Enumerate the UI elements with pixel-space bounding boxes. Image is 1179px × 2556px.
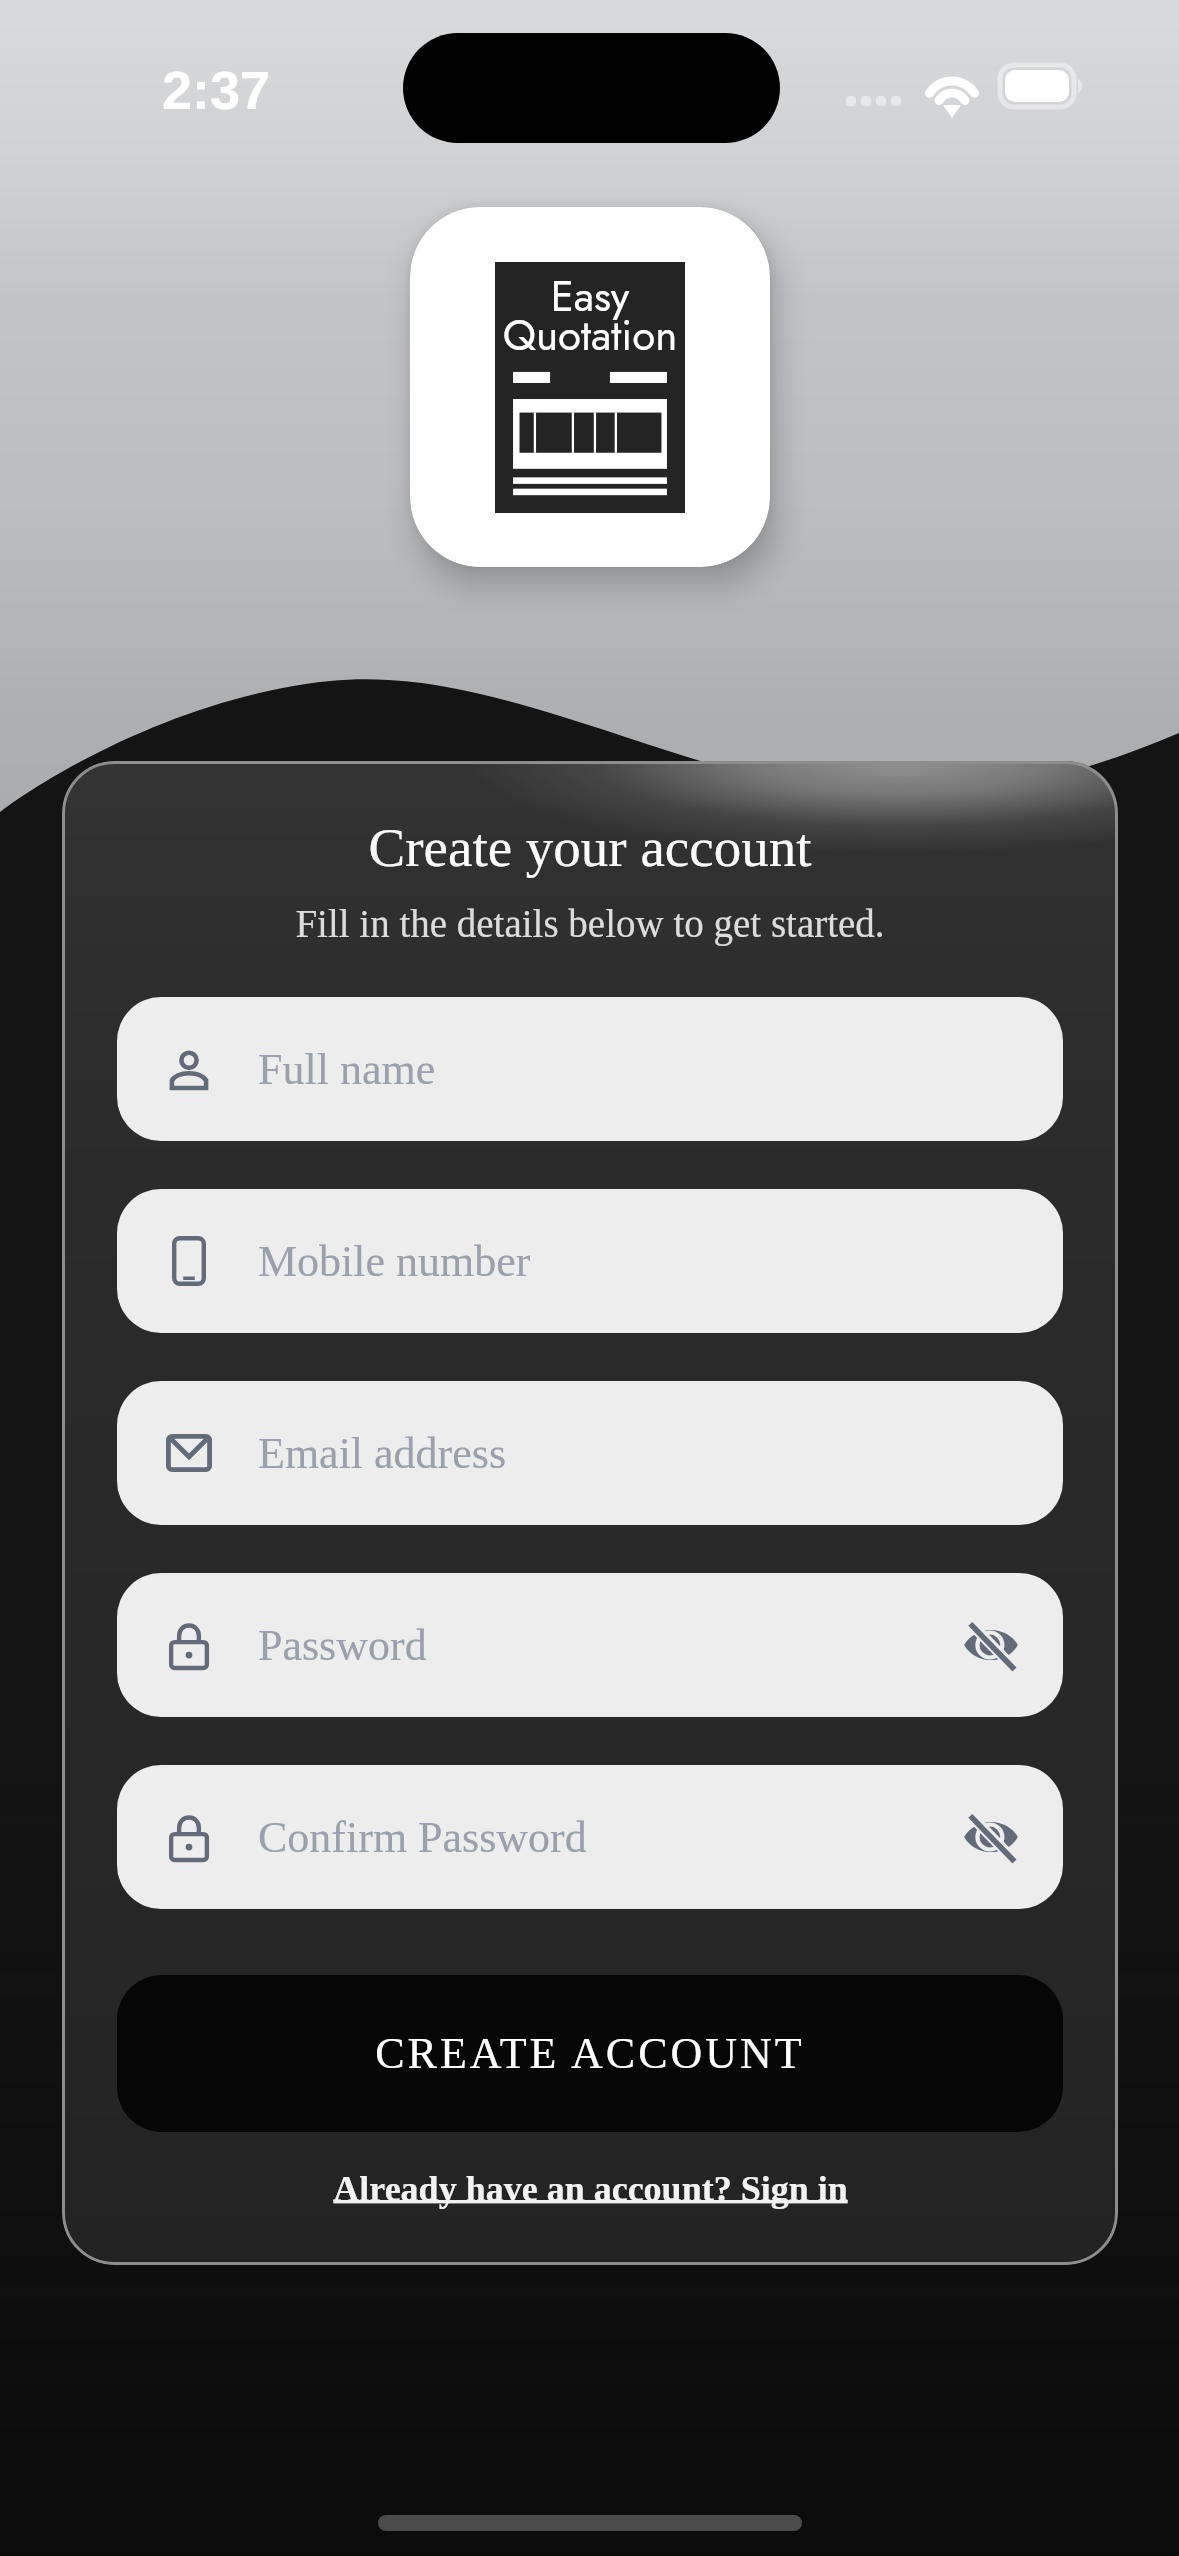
staticText: Email address [258, 1429, 507, 1478]
button[interactable]: Show password [955, 1609, 1027, 1681]
button[interactable]: Already have an account? Sign in [320, 2158, 860, 2220]
button[interactable]: Password [117, 1573, 1063, 1717]
staticText: CREATE ACCOUNT [375, 2029, 805, 2078]
staticText: Easy [495, 266, 685, 327]
button[interactable]: Mobile number [117, 1189, 1063, 1333]
other: Easy Quotation logo [410, 207, 770, 567]
staticText: Confirm Password [258, 1813, 587, 1862]
staticText: 2:37 [162, 60, 271, 120]
button[interactable]: Confirm Password [117, 1765, 1063, 1909]
staticText: Mobile number [258, 1237, 531, 1286]
staticText: Create your account [62, 817, 1118, 878]
button[interactable]: Full name [117, 997, 1063, 1141]
button[interactable]: Email address [117, 1381, 1063, 1525]
staticText: Already have an account? Sign in [333, 2169, 848, 2209]
button[interactable]: CREATE ACCOUNT [117, 1975, 1063, 2132]
button[interactable]: Show password [955, 1801, 1027, 1873]
staticText: Quotation [495, 305, 685, 366]
staticText: Full name [258, 1045, 436, 1094]
staticText: Password [258, 1621, 427, 1670]
staticText: Fill in the details below to get started… [62, 902, 1118, 945]
